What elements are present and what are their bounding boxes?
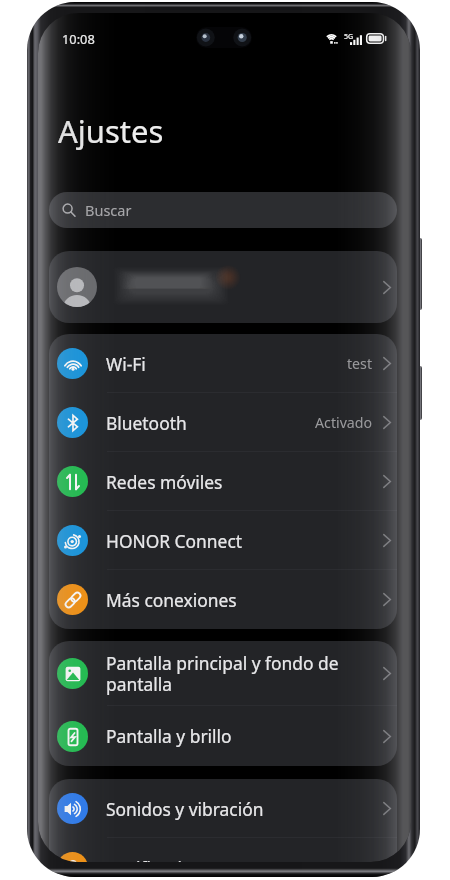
button[interactable]: Buscar <box>49 192 397 228</box>
button[interactable]: Notificaciones <box>49 838 397 862</box>
staticText: Pantalla principal y fondo de pantalla <box>106 651 373 696</box>
button[interactable]: Wi-Fi <box>49 334 397 393</box>
staticText: Redes móviles <box>106 470 373 494</box>
staticText: Notificaciones <box>106 856 373 862</box>
button[interactable]: Pantalla y brillo <box>49 706 397 766</box>
staticText: HONOR Connect <box>106 529 373 553</box>
staticText: Ajustes <box>58 110 164 152</box>
button[interactable]: Bluetooth <box>49 393 397 452</box>
staticText: 5G <box>344 32 354 42</box>
button[interactable] <box>49 251 397 323</box>
button[interactable]: Redes móviles <box>49 452 397 511</box>
staticText: Más conexiones <box>106 588 373 612</box>
staticText: Buscar <box>85 200 132 220</box>
button[interactable]: HONOR Connect <box>49 511 397 570</box>
staticText: Wi-Fi <box>106 352 337 376</box>
staticText: 10:08 <box>62 30 95 47</box>
button[interactable]: Pantalla principal y fondo de pantalla <box>49 641 397 706</box>
staticText: Activado <box>315 413 373 432</box>
staticText: test <box>347 354 373 373</box>
button[interactable]: Sonidos y vibración <box>49 779 397 838</box>
staticText: Pantalla y brillo <box>106 724 373 748</box>
staticText: Sonidos y vibración <box>106 797 373 821</box>
staticText: Bluetooth <box>106 411 305 435</box>
button[interactable]: Más conexiones <box>49 570 397 629</box>
